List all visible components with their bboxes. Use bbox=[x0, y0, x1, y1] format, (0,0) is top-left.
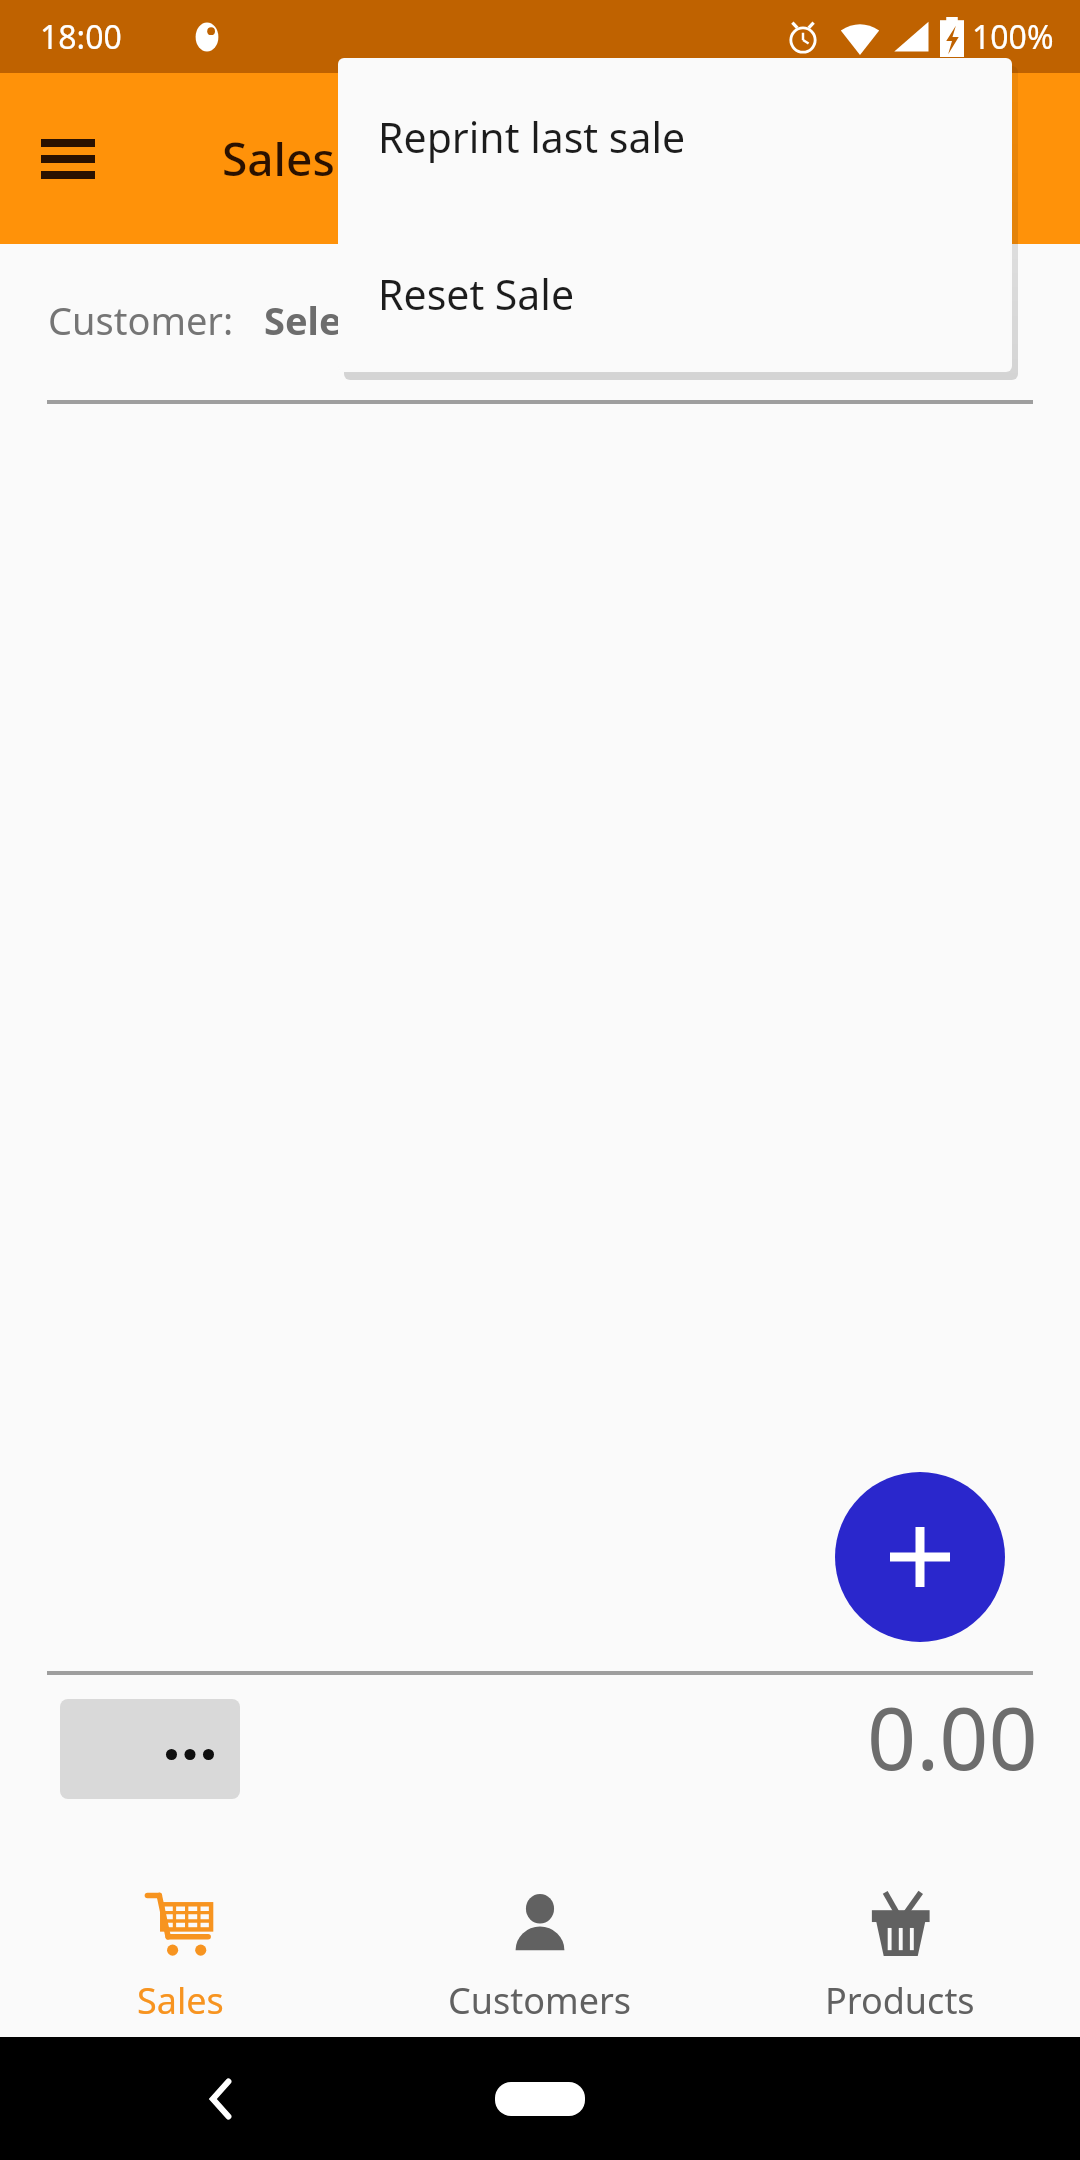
button[interactable]: Products bbox=[720, 1840, 1080, 2037]
staticText: Customers bbox=[448, 1976, 632, 2025]
button[interactable]: Reset Sale bbox=[338, 215, 1012, 372]
staticText: Products bbox=[825, 1976, 975, 2025]
button[interactable]: Add item bbox=[835, 1472, 1005, 1642]
button[interactable]: Reprint last sale bbox=[338, 58, 1012, 215]
staticText: 0.00 bbox=[867, 1678, 1038, 1795]
button[interactable]: Customer: bbox=[0, 290, 1080, 350]
staticText: Sales bbox=[137, 1976, 224, 2025]
button[interactable]: Home bbox=[495, 2082, 585, 2116]
staticText: 18:00 bbox=[40, 15, 122, 59]
staticText: Reset Sale bbox=[378, 266, 575, 322]
staticText: Sales bbox=[222, 127, 335, 190]
button[interactable]: More options bbox=[60, 1699, 240, 1799]
staticText: Reprint last sale bbox=[378, 109, 686, 165]
button[interactable]: Customers bbox=[360, 1840, 720, 2037]
button[interactable]: Sales bbox=[0, 1840, 360, 2037]
staticText: Customer: bbox=[48, 294, 234, 346]
staticText: 100% bbox=[972, 15, 1054, 59]
button[interactable]: Open navigation drawer bbox=[26, 117, 110, 201]
staticText: Select Customer bbox=[264, 294, 573, 346]
button[interactable]: Back bbox=[180, 2057, 264, 2141]
